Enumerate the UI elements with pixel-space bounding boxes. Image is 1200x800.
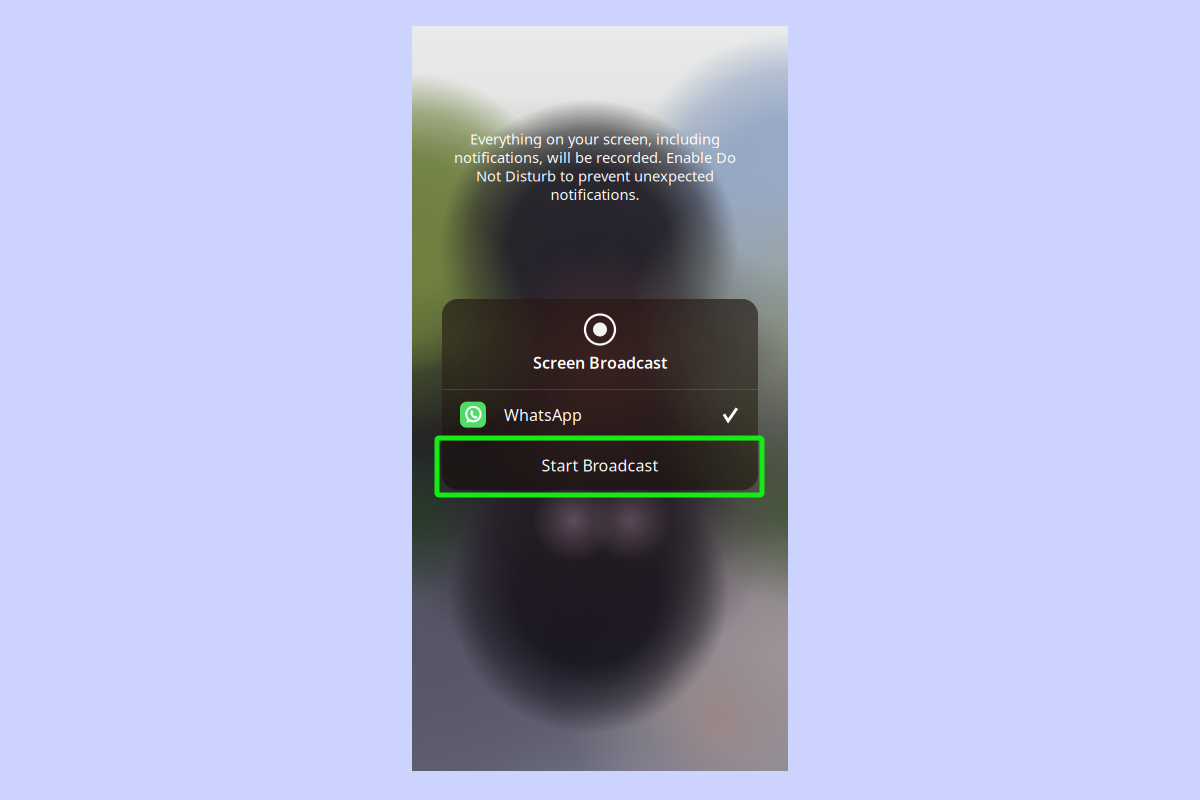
staticText: Start Broadcast xyxy=(541,455,658,476)
staticText: notifications, will be recorded. Enable … xyxy=(454,147,736,167)
staticText: Everything on your screen, including xyxy=(470,129,720,148)
staticText: notifications. xyxy=(550,184,639,204)
staticText: Not Disturb to prevent unexpected xyxy=(476,166,714,185)
button[interactable]: WhatsApp xyxy=(442,390,758,439)
staticText: WhatsApp xyxy=(504,404,582,425)
staticText: Screen Broadcast xyxy=(533,352,667,373)
button[interactable]: Start Broadcast xyxy=(442,440,758,490)
